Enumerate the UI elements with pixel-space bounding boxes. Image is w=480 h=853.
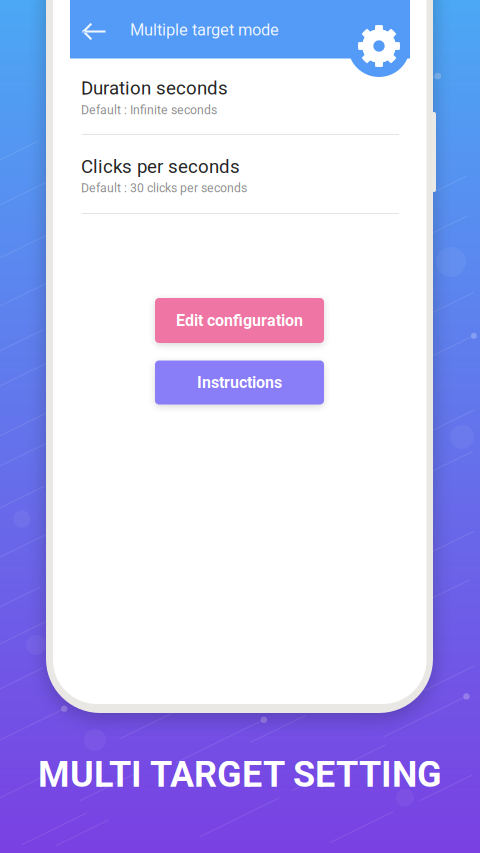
staticText: Instructions	[197, 373, 282, 392]
staticText: MULTI TARGET SETTING	[38, 753, 442, 796]
button[interactable]: Back	[69, 7, 117, 55]
staticText: Default : 30 clicks per seconds	[81, 181, 247, 195]
staticText: Default : Infinite seconds	[81, 103, 217, 117]
button[interactable]: Clicks per seconds	[70, 135, 410, 213]
staticText: Duration seconds	[81, 77, 228, 99]
staticText: Edit configuration	[176, 311, 303, 330]
button[interactable]: Instructions	[155, 360, 324, 404]
button[interactable]: Settings	[348, 15, 410, 77]
staticText: Clicks per seconds	[81, 156, 240, 177]
button[interactable]: Edit configuration	[155, 298, 324, 343]
button[interactable]: Duration seconds	[70, 58, 410, 134]
staticText: Multiple target mode	[130, 20, 279, 40]
